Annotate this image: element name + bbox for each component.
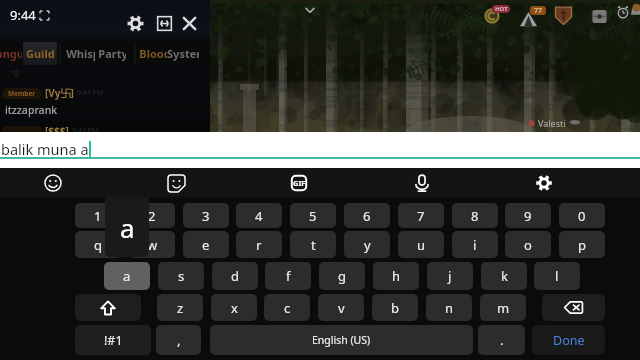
- button[interactable]: m: [480, 294, 526, 321]
- button[interactable]: Whisp: [66, 42, 95, 65]
- button[interactable]: balik muna a: [0, 132, 640, 168]
- staticText: p: [578, 236, 586, 254]
- button[interactable]: 7: [398, 203, 444, 228]
- staticText: .: [500, 331, 504, 349]
- button[interactable]: Member: [2, 86, 104, 100]
- button[interactable]: 5: [290, 203, 336, 228]
- staticText: 9: [524, 207, 532, 225]
- button[interactable]: 3: [183, 203, 229, 228]
- button[interactable]: n: [426, 294, 472, 321]
- button[interactable]: Close chat: [180, 14, 199, 33]
- button[interactable]: Stickers: [168, 175, 185, 192]
- button[interactable]: Done: [532, 325, 605, 355]
- button[interactable]: Chat settings: [126, 14, 145, 33]
- button[interactable]: Voice input: [413, 174, 431, 192]
- staticText: [$$$]: [45, 124, 69, 138]
- button[interactable]: 2: [129, 203, 175, 228]
- staticText: Valesti: [538, 117, 566, 129]
- button[interactable]: q: [75, 231, 121, 258]
- staticText: 9:41 PM: [77, 88, 104, 98]
- button[interactable]: Notifications: [629, 4, 640, 19]
- button[interactable]: English (US): [210, 325, 473, 355]
- button[interactable]: p: [559, 231, 605, 258]
- staticText: g: [338, 267, 346, 285]
- staticText: 8: [471, 207, 479, 225]
- button[interactable]: !#1: [75, 325, 151, 355]
- staticText: a: [120, 210, 135, 245]
- button[interactable]: [542, 294, 605, 321]
- staticText: Done: [553, 332, 585, 349]
- staticText: c: [284, 299, 291, 317]
- staticText: angu: [0, 46, 22, 61]
- button[interactable]: .: [478, 325, 525, 355]
- button[interactable]: [$$$]: [2, 124, 99, 138]
- button[interactable]: Coins: [484, 8, 500, 24]
- button[interactable]: k: [481, 262, 527, 290]
- staticText: a: [123, 267, 131, 285]
- button[interactable]: y: [344, 231, 390, 258]
- staticText: 77: [534, 6, 543, 15]
- button[interactable]: Collapse: [303, 3, 317, 17]
- button[interactable]: v: [318, 294, 364, 321]
- staticText: 7: [417, 207, 425, 225]
- staticText: d: [231, 267, 239, 285]
- button[interactable]: Camp: [519, 10, 538, 29]
- button[interactable]: w: [129, 231, 175, 258]
- button[interactable]: Equipment: [554, 6, 573, 25]
- button[interactable]: [75, 294, 141, 321]
- button[interactable]: Resize chat: [155, 14, 174, 33]
- button[interactable]: g: [319, 262, 365, 290]
- button[interactable]: r: [236, 231, 282, 258]
- button[interactable]: Timer: [616, 5, 630, 19]
- staticText: 4: [255, 207, 263, 225]
- button[interactable]: e: [183, 231, 229, 258]
- staticText: Party: [98, 46, 126, 61]
- button[interactable]: Party: [98, 42, 126, 65]
- staticText: 9:42 PM: [72, 126, 99, 136]
- staticText: English (US): [312, 333, 371, 347]
- staticText: m: [497, 299, 510, 317]
- button[interactable]: Emoji: [44, 174, 62, 192]
- staticText: 1: [94, 207, 102, 225]
- button[interactable]: z: [157, 294, 203, 321]
- staticText: Member: [8, 89, 36, 98]
- staticText: 6: [363, 207, 371, 225]
- button[interactable]: h: [373, 262, 419, 290]
- button[interactable]: Guild: [23, 42, 57, 65]
- button[interactable]: angu: [0, 42, 22, 65]
- button[interactable]: i: [452, 231, 498, 258]
- button[interactable]: Blood: [139, 42, 167, 65]
- button[interactable]: l: [534, 262, 580, 290]
- button[interactable]: 0: [559, 203, 605, 228]
- staticText: b: [391, 299, 399, 317]
- button[interactable]: s: [158, 262, 204, 290]
- button[interactable]: b: [372, 294, 418, 321]
- staticText: t: [311, 236, 316, 254]
- button[interactable]: d: [212, 262, 258, 290]
- button[interactable]: j: [427, 262, 473, 290]
- staticText: !#1: [104, 332, 123, 349]
- button[interactable]: GIF: [291, 175, 307, 191]
- button[interactable]: f: [265, 262, 311, 290]
- button[interactable]: Keyboard settings: [535, 174, 553, 192]
- button[interactable]: x: [211, 294, 257, 321]
- button[interactable]: 1: [75, 203, 121, 228]
- button[interactable]: Inventory: [591, 8, 608, 25]
- button[interactable]: 6: [344, 203, 390, 228]
- button[interactable]: u: [398, 231, 444, 258]
- button[interactable]: a: [104, 262, 150, 290]
- staticText: HOT: [495, 5, 508, 13]
- staticText: 0: [578, 207, 586, 225]
- button[interactable]: 9: [505, 203, 551, 228]
- button[interactable]: o: [505, 231, 551, 258]
- staticText: itzzaprank: [5, 103, 58, 117]
- button[interactable]: c: [264, 294, 310, 321]
- button[interactable]: 8: [452, 203, 498, 228]
- staticText: GIF: [293, 178, 306, 188]
- staticText: v: [338, 299, 345, 317]
- button[interactable]: t: [290, 231, 336, 258]
- button[interactable]: 4: [236, 203, 282, 228]
- staticText: q: [94, 236, 102, 254]
- button[interactable]: ,: [156, 325, 201, 355]
- button[interactable]: System: [167, 42, 199, 65]
